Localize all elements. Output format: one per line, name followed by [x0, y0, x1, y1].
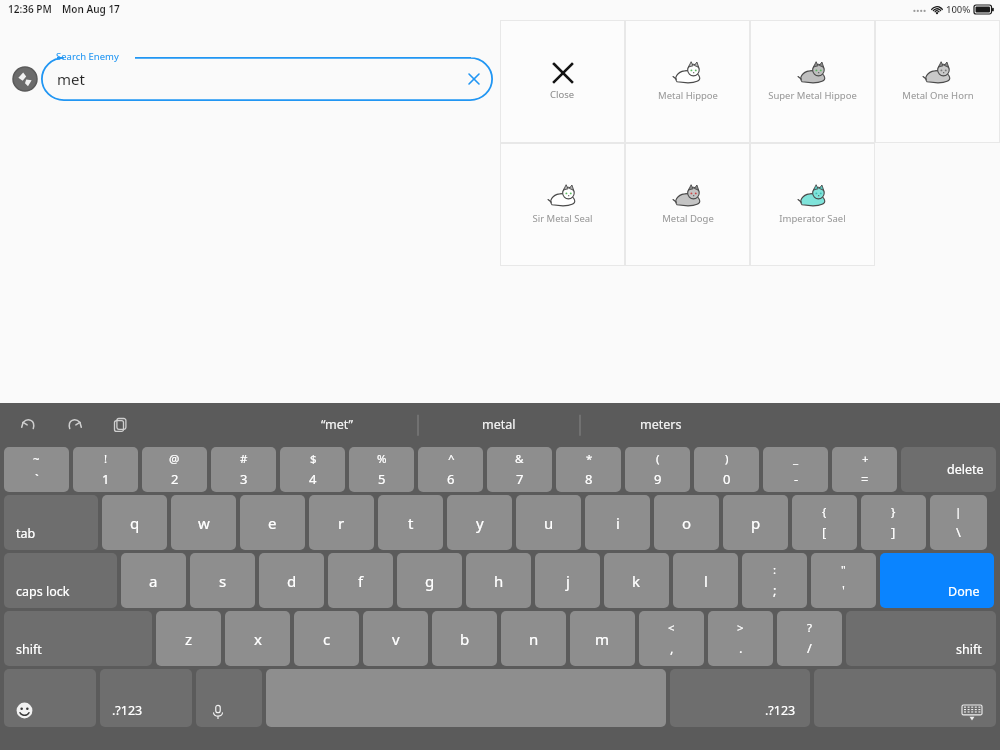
button[interactable]: z: [156, 611, 221, 666]
button[interactable]: m: [570, 611, 635, 666]
staticText: shift: [16, 641, 42, 658]
button[interactable]: c: [294, 611, 359, 666]
button[interactable]: #: [211, 447, 276, 492]
button[interactable]: s: [190, 553, 255, 608]
button[interactable]: v: [363, 611, 428, 666]
button[interactable]: d: [259, 553, 324, 608]
button[interactable]: f: [328, 553, 393, 608]
button[interactable]: ): [694, 447, 759, 492]
staticText: y: [476, 513, 484, 533]
button[interactable]: q: [102, 495, 167, 550]
button[interactable]: Paste: [108, 412, 132, 436]
button[interactable]: j: [535, 553, 600, 608]
button[interactable]: ^: [418, 447, 483, 492]
button[interactable]: e: [240, 495, 305, 550]
button[interactable]: shift: [4, 611, 152, 666]
button[interactable]: +: [832, 447, 897, 492]
button[interactable]: *: [556, 447, 621, 492]
button[interactable]: %: [349, 447, 414, 492]
button[interactable]: <: [639, 611, 704, 666]
staticText: [: [822, 523, 827, 541]
staticText: #: [240, 451, 248, 467]
staticText: Sir Metal Seal: [532, 212, 593, 225]
button[interactable]: w: [171, 495, 236, 550]
staticText: p: [751, 513, 761, 533]
button[interactable]: ?: [777, 611, 842, 666]
button[interactable]: ~: [4, 447, 69, 492]
staticText: 9: [654, 470, 662, 488]
staticText: =: [861, 470, 869, 488]
staticText: .?123: [765, 702, 796, 719]
button[interactable]: $: [280, 447, 345, 492]
staticText: n: [529, 629, 539, 649]
button[interactable]: n: [501, 611, 566, 666]
button[interactable]: .?123: [670, 669, 810, 727]
staticText: ;: [773, 581, 777, 599]
button[interactable]: i: [585, 495, 650, 550]
button[interactable]: x: [225, 611, 290, 666]
button[interactable]: tab: [4, 495, 98, 550]
button[interactable]: r: [309, 495, 374, 550]
button[interactable]: b: [432, 611, 497, 666]
button[interactable]: Language: [12, 66, 38, 92]
button[interactable]: Dictation: [196, 669, 262, 727]
button[interactable]: }: [861, 495, 926, 550]
button[interactable]: l: [673, 553, 738, 608]
button[interactable]: Emoji: [4, 669, 96, 727]
button[interactable]: Close: [500, 20, 625, 143]
button[interactable]: o: [654, 495, 719, 550]
button[interactable]: Search Enemy: [41, 57, 493, 101]
button[interactable]: Hide keyboard: [814, 669, 996, 727]
button[interactable]: !: [73, 447, 138, 492]
staticText: i: [616, 513, 620, 533]
staticText: t: [408, 513, 414, 533]
button[interactable]: @: [142, 447, 207, 492]
button[interactable]: .?123: [100, 669, 192, 727]
button[interactable]: “met”: [256, 403, 418, 445]
button[interactable]: meters: [580, 403, 742, 445]
button[interactable]: a: [121, 553, 186, 608]
button[interactable]: k: [604, 553, 669, 608]
staticText: 8: [585, 470, 593, 488]
button[interactable]: &: [487, 447, 552, 492]
staticText: 7: [516, 470, 524, 488]
staticText: Imperator Sael: [779, 212, 846, 225]
button[interactable]: h: [466, 553, 531, 608]
staticText: Close: [550, 88, 575, 101]
button[interactable]: >: [708, 611, 773, 666]
button[interactable]: p: [723, 495, 788, 550]
staticText: c: [323, 629, 331, 649]
button[interactable]: Undo: [16, 412, 40, 436]
button[interactable]: Done: [880, 553, 994, 608]
button[interactable]: t: [378, 495, 443, 550]
button[interactable]: u: [516, 495, 581, 550]
button[interactable]: Clear text: [463, 68, 485, 90]
button[interactable]: |: [930, 495, 987, 550]
button[interactable]: Sir Metal Seal: [500, 143, 625, 266]
staticText: d: [287, 571, 297, 591]
staticText: %: [377, 451, 387, 467]
button[interactable]: Metal Doge: [625, 143, 750, 266]
button[interactable]: (: [625, 447, 690, 492]
button[interactable]: y: [447, 495, 512, 550]
button[interactable]: caps lock: [4, 553, 117, 608]
staticText: Super Metal Hippoe: [768, 89, 857, 102]
button[interactable]: Metal Hippoe: [625, 20, 750, 143]
button[interactable]: Imperator Sael: [750, 143, 875, 266]
button[interactable]: _: [763, 447, 828, 492]
button[interactable]: Delete: [901, 447, 996, 492]
button[interactable]: Super Metal Hippoe: [750, 20, 875, 143]
staticText: ': [842, 581, 845, 599]
button[interactable]: shift: [846, 611, 996, 666]
button[interactable]: g: [397, 553, 462, 608]
button[interactable]: {: [792, 495, 857, 550]
staticText: caps lock: [16, 583, 70, 600]
button[interactable]: Redo: [62, 412, 86, 436]
button[interactable]: Metal One Horn: [875, 20, 1000, 143]
staticText: h: [494, 571, 504, 591]
button[interactable]: ": [811, 553, 876, 608]
button[interactable]: :: [742, 553, 807, 608]
staticText: ^: [448, 451, 455, 467]
button[interactable]: metal: [418, 403, 580, 445]
